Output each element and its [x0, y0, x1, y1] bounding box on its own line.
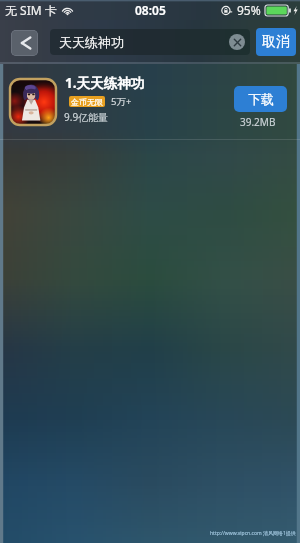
- button[interactable]: 下载: [234, 86, 287, 112]
- staticText: 95%: [237, 2, 261, 18]
- button[interactable]: 1.天天练神功: [0, 64, 300, 140]
- staticText: 1.天天练神功: [65, 74, 145, 92]
- staticText: 金币无限: [71, 97, 103, 107]
- button[interactable]: Clear text: [229, 34, 245, 50]
- staticText: 08:05: [135, 2, 166, 18]
- staticText: 39.2MB: [240, 115, 276, 129]
- button[interactable]: Back: [11, 30, 38, 56]
- staticText: 9.9亿能量: [64, 110, 109, 124]
- staticText: 取消: [262, 33, 290, 51]
- staticText: 天天练神功: [59, 34, 124, 50]
- staticText: 无 SIM 卡: [5, 2, 57, 18]
- button[interactable]: 取消: [256, 28, 296, 56]
- staticText: http://www.vipcn.com 清风网络1提供: [210, 530, 296, 537]
- staticText: 5万+: [111, 95, 132, 108]
- button[interactable]: 天天练神功: [50, 29, 250, 55]
- staticText: 下载: [248, 91, 274, 107]
